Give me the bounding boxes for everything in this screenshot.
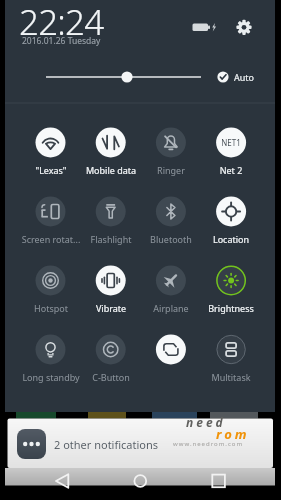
button[interactable] xyxy=(40,468,84,496)
button[interactable] xyxy=(81,264,141,318)
staticText: C-Button xyxy=(77,371,145,500)
staticText: NET1 xyxy=(215,137,247,500)
staticText: 22:24 xyxy=(19,0,104,46)
staticText: Mobile data xyxy=(77,164,145,500)
staticText: rom xyxy=(216,425,250,443)
button[interactable] xyxy=(40,65,207,89)
staticText: Long standby xyxy=(17,371,85,500)
button[interactable] xyxy=(154,333,188,367)
staticText: Net 2 xyxy=(197,164,265,500)
staticText: Hotspot xyxy=(17,302,85,500)
button[interactable] xyxy=(81,333,141,387)
button[interactable] xyxy=(141,195,201,249)
staticText: "Lexas" xyxy=(17,164,85,500)
button[interactable] xyxy=(141,264,201,318)
button[interactable] xyxy=(21,264,81,318)
button[interactable] xyxy=(201,195,261,249)
staticText: Airplane xyxy=(137,302,205,500)
button[interactable] xyxy=(141,126,201,180)
button[interactable] xyxy=(201,264,261,318)
button[interactable] xyxy=(118,468,162,496)
staticText: need xyxy=(186,414,226,430)
button[interactable] xyxy=(196,468,240,496)
staticText: Ringer xyxy=(137,164,205,500)
staticText: 2 other notifications xyxy=(54,437,159,452)
button[interactable] xyxy=(21,126,81,180)
staticText: Screen rotat... xyxy=(17,233,85,500)
button[interactable] xyxy=(212,66,262,88)
button[interactable] xyxy=(232,15,256,39)
staticText: www.needrom.com xyxy=(173,440,244,448)
staticText: Bluetooth xyxy=(137,233,205,500)
button[interactable] xyxy=(21,195,81,249)
button[interactable] xyxy=(81,195,141,249)
staticText: Flashlight xyxy=(77,233,145,500)
staticText: Location xyxy=(197,233,265,500)
button[interactable] xyxy=(81,126,141,180)
staticText: Auto xyxy=(234,71,255,83)
button[interactable] xyxy=(201,333,261,387)
staticText: 2016.01.26 Tuesday xyxy=(22,35,101,47)
staticText: Vibrate xyxy=(77,302,145,500)
staticText: Brightness xyxy=(197,302,265,500)
staticText: Multitask xyxy=(197,371,265,500)
button[interactable] xyxy=(21,333,81,387)
button[interactable] xyxy=(7,418,273,468)
button[interactable] xyxy=(201,126,261,180)
